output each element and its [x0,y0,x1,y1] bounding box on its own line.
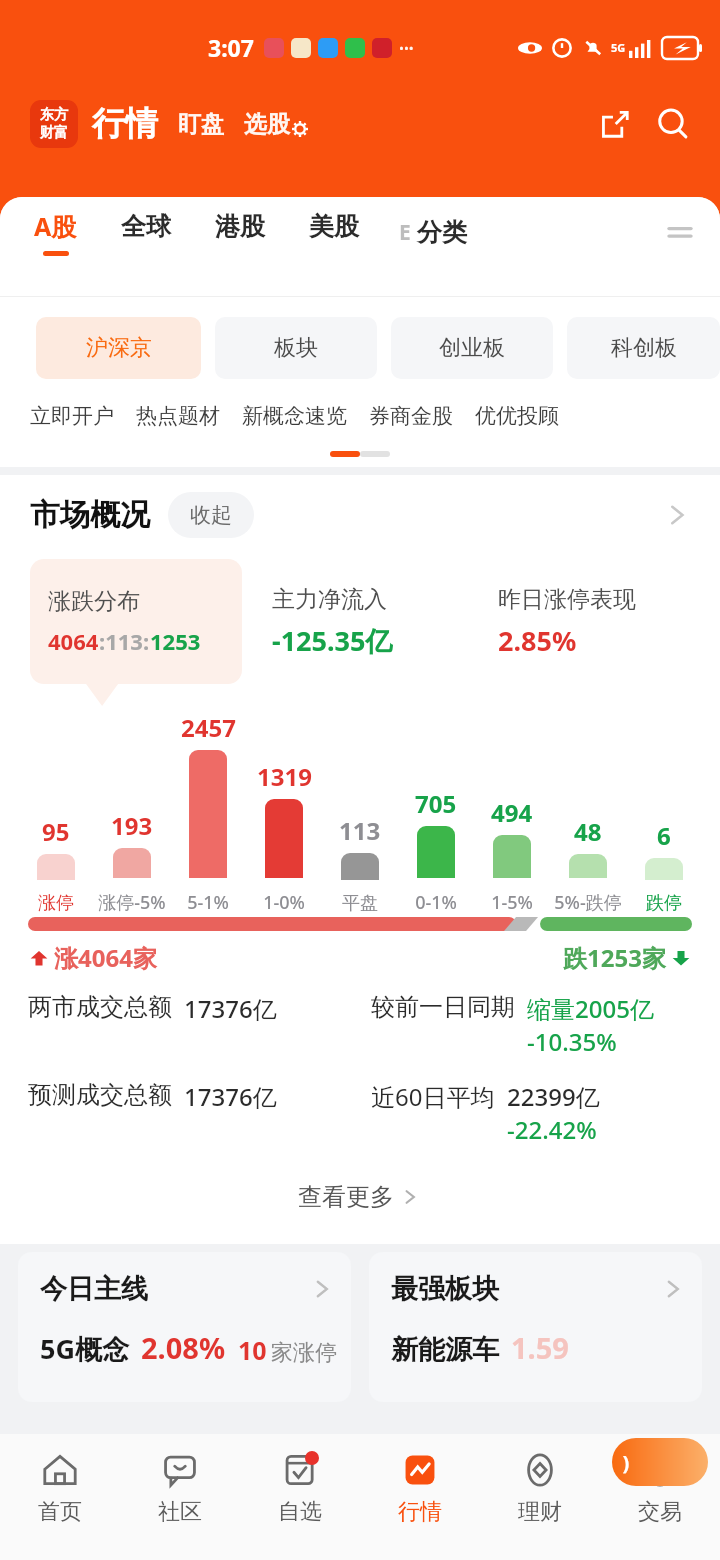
button[interactable]: 立即开户 [26,399,118,433]
button[interactable]: 今日主线 [18,1252,351,1402]
staticText: 港股 [215,211,265,242]
button[interactable]: 沪深京 [36,317,201,379]
button[interactable]: 查看更多 [268,1168,452,1226]
staticText: A股 [34,209,77,243]
button[interactable]: 自选 [240,1448,360,1560]
staticText: 2.85% [498,622,577,659]
button[interactable]: A股 [34,197,77,268]
staticText: 705 [415,787,457,820]
staticText: 选股 [244,110,290,139]
button[interactable]: 创业板 [391,317,553,379]
button[interactable]: 行情 [360,1448,480,1560]
button[interactable]: 理财 [480,1448,600,1560]
staticText: 较前一日同期 [371,992,515,1022]
staticText: E [399,218,411,247]
staticText: 95 [42,815,70,848]
staticText: 首页 [38,1498,82,1526]
staticText: 1319 [257,760,312,793]
staticText: 券商金股 [369,403,453,429]
staticText: 2.08% [141,1328,226,1367]
staticText: 1253 [150,626,201,656]
staticText: 5-1% [187,890,229,915]
staticText: 板块 [274,334,318,362]
button[interactable]: 社区 [120,1448,240,1560]
staticText: 主力净流入 [272,585,387,614]
staticText: 1.59 [511,1328,569,1367]
staticText: 涨跌分布 [48,587,140,616]
staticText: 5%-跌停 [554,890,622,915]
staticText: 4064 [48,626,99,656]
staticText: 社区 [158,1498,202,1526]
button[interactable]: E [399,205,467,260]
staticText: 美股 [309,211,359,242]
staticText: 昨日涨停表现 [498,585,636,614]
staticText: 分类 [417,217,467,248]
staticText: ••• [399,39,414,57]
staticText: 近60日平均 [371,1080,495,1113]
button[interactable]: 主力净流入 [256,559,468,684]
staticText: 东方 [40,106,68,124]
staticText: 立即开户 [30,403,114,429]
button[interactable]: 最强板块 [369,1252,702,1402]
button[interactable]: 市场概况 [0,475,720,555]
staticText: 热点题材 [136,403,220,429]
staticText: 优优投顾 [475,403,559,429]
staticText: 新概念速览 [242,403,347,429]
staticText: 最强板块 [391,1272,499,1306]
button[interactable]: 交易 [600,1448,720,1560]
staticText: 113 [339,814,381,847]
button[interactable]: 港股 [215,199,265,267]
staticText: 行情 [92,103,158,145]
button[interactable]: 选股 [244,110,310,139]
staticText: 22399亿 [507,1080,600,1113]
staticText: 查看更多 [298,1182,394,1212]
button[interactable]: 盯盘 [176,106,226,143]
staticText: 跌1253家 [563,941,666,974]
staticText: 缩量2005亿 [527,992,654,1025]
button[interactable]: Share [592,101,638,147]
staticText: ) [612,1449,630,1476]
button[interactable]: 全球 [121,199,171,267]
staticText: 创业板 [439,334,505,362]
staticText: 预测成交总额 [28,1080,172,1110]
button[interactable]: 券商金股 [365,399,457,433]
button[interactable]: 板块 [215,317,377,379]
button[interactable]: 美股 [309,199,359,267]
button[interactable]: 优优投顾 [471,399,563,433]
staticText: 1-5% [491,890,533,915]
button[interactable]: 涨跌分布 [30,559,242,684]
staticText: 10 [238,1333,267,1367]
staticText: 新能源车 [391,1333,499,1367]
staticText: 平盘 [342,892,378,915]
staticText: 财富 [40,124,68,142]
staticText: 6 [657,819,671,852]
staticText: 沪深京 [86,334,152,362]
staticText: 跌停 [646,892,682,915]
staticText: 全球 [121,211,171,242]
staticText: :113: [99,626,150,656]
staticText: 市场概况 [30,496,150,534]
staticText: 17376亿 [184,1080,277,1113]
button[interactable]: 热点题材 [132,399,224,433]
button[interactable]: More tabs [660,213,700,253]
button[interactable]: 科创板 [567,317,720,379]
staticText: 科创板 [611,334,677,362]
button[interactable]: 昨日涨停表现 [482,559,694,684]
staticText: 5G概念 [40,1330,129,1367]
staticText: 涨停 [38,892,74,915]
staticText: 涨停-5% [98,890,166,915]
staticText: 行情 [398,1498,442,1526]
staticText: 48 [574,815,602,848]
button[interactable]: 首页 [0,1448,120,1560]
staticText: 193 [111,809,153,842]
staticText: 交易 [638,1498,682,1526]
staticText: 494 [491,796,533,829]
button[interactable]: 新概念速览 [238,399,351,433]
staticText: 收起 [190,502,232,528]
button[interactable]: Search [650,101,696,147]
staticText: 家涨停 [271,1339,337,1367]
staticText: -10.35% [527,1025,617,1058]
button[interactable]: 收起 [168,492,254,538]
staticText: 自选 [278,1498,322,1526]
staticText: 两市成交总额 [28,992,172,1022]
